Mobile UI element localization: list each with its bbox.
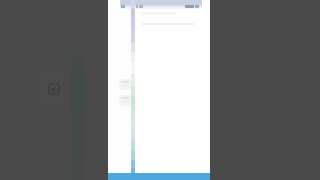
button[interactable] bbox=[119, 95, 131, 106]
button[interactable] bbox=[119, 79, 131, 90]
button[interactable]: Unmute bbox=[38, 70, 70, 108]
